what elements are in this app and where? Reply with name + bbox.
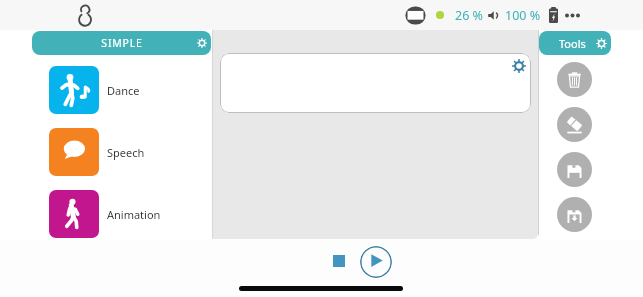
staticText: Speech (107, 145, 145, 160)
staticText: Tools (559, 36, 586, 51)
staticText: 26 % (455, 7, 483, 24)
button[interactable]: Erase (557, 107, 592, 142)
button[interactable]: Delete (557, 62, 592, 97)
button[interactable]: Animation (41, 190, 201, 238)
button[interactable]: Dance (41, 66, 201, 114)
button[interactable]: Save as (557, 197, 592, 232)
button[interactable]: Tools (539, 31, 611, 55)
staticText: 100 % (505, 7, 541, 24)
staticText: Animation (107, 207, 161, 222)
button[interactable]: Event settings (512, 59, 526, 73)
button[interactable]: Event settings (220, 53, 531, 113)
button[interactable]: Play (360, 246, 392, 278)
staticText: SIMPLE (101, 36, 143, 50)
button[interactable]: SIMPLE (32, 31, 211, 55)
staticText: Dance (107, 83, 140, 98)
button[interactable]: Speech (41, 128, 201, 176)
button[interactable]: Save (557, 152, 592, 187)
